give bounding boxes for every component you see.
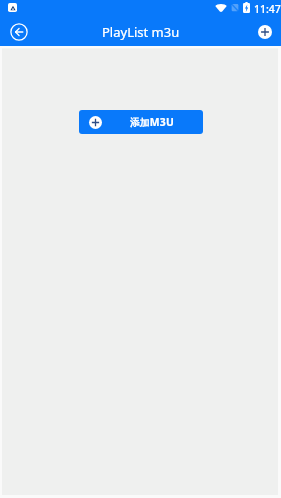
staticText: 11:47 — [254, 2, 281, 16]
button[interactable]: Add playlist — [254, 21, 276, 43]
button[interactable]: 添加M3U — [79, 110, 203, 134]
staticText: PlayList m3u — [102, 23, 180, 41]
button[interactable]: Back — [8, 21, 30, 43]
staticText: 添加M3U — [130, 115, 175, 129]
